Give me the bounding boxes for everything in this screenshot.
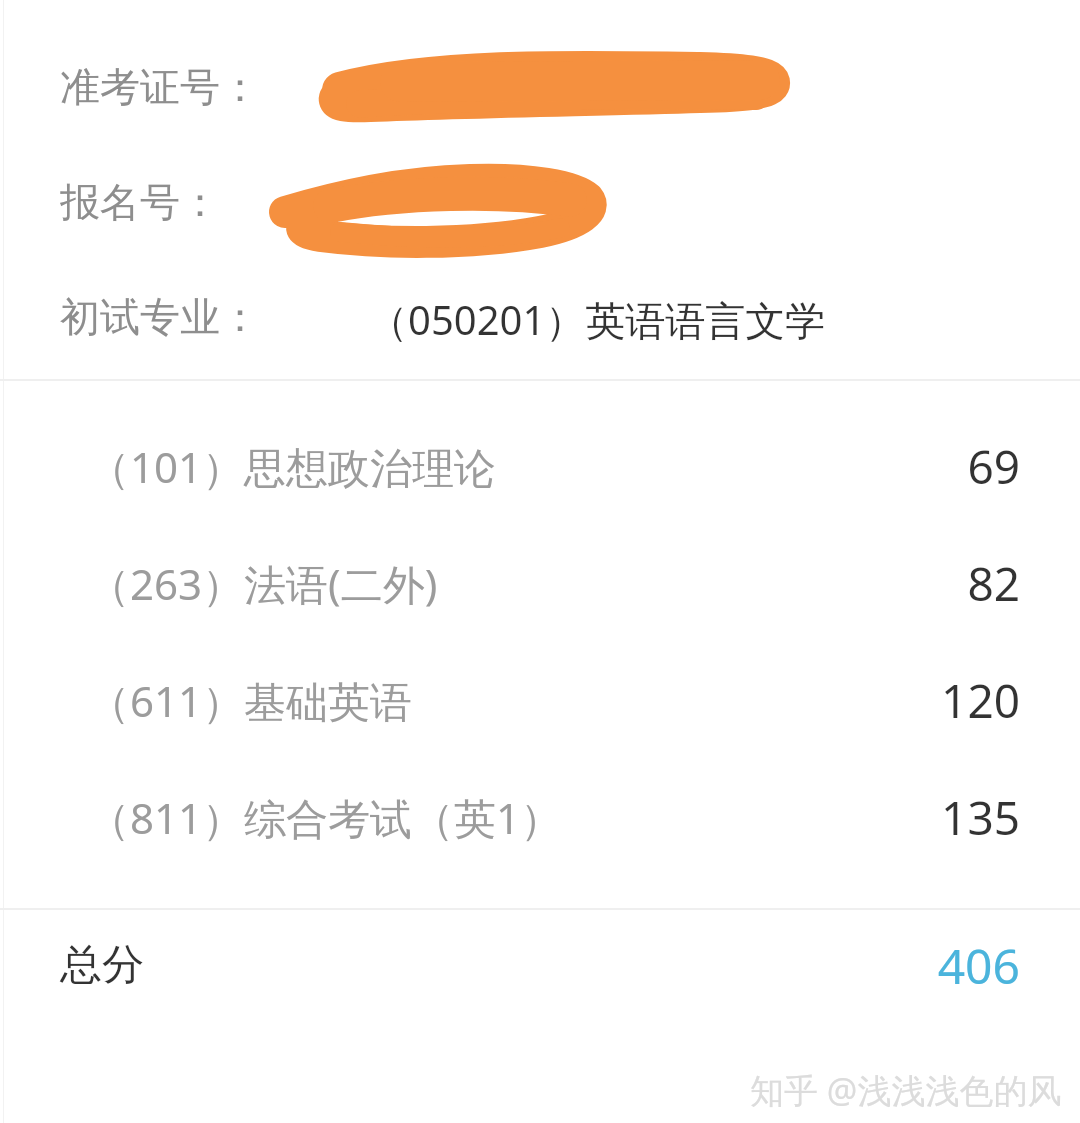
staticText: （611）基础英语 (88, 672, 413, 729)
staticText: 初试专业： (60, 292, 260, 342)
button[interactable]: （611）基础英语 (0, 642, 1080, 759)
button[interactable]: 总分 (0, 908, 1080, 1023)
staticText: 总分 (60, 939, 144, 992)
staticText: 82 (967, 552, 1020, 615)
button[interactable]: （811）综合考试（英1） (0, 759, 1080, 876)
staticText: （263）法语(二外) (88, 555, 438, 612)
staticText: （050201）英语语言文学 (368, 292, 826, 347)
staticText: 406 (937, 933, 1020, 998)
button[interactable]: （101）思想政治理论 (0, 408, 1080, 525)
staticText: （101）思想政治理论 (88, 438, 497, 495)
staticText: 69 (967, 435, 1020, 498)
staticText: 知乎 @浅浅浅色的风 (750, 1067, 1062, 1113)
staticText: 准考证号： (60, 62, 260, 112)
staticText: 120 (941, 669, 1020, 732)
staticText: 135 (941, 786, 1020, 849)
staticText: （811）综合考试（英1） (88, 789, 563, 846)
staticText: 报名号： (60, 177, 220, 227)
button[interactable]: （263）法语(二外) (0, 525, 1080, 642)
